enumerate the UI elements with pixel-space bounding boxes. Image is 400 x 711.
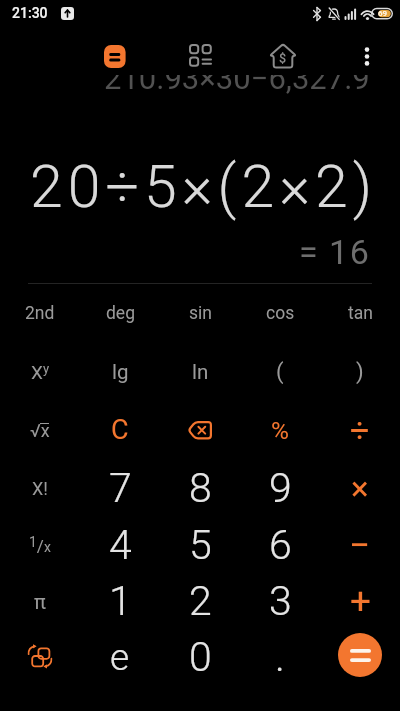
button[interactable]: tan	[321, 285, 399, 341]
staticText: 4	[109, 521, 132, 569]
button[interactable]: 5	[161, 517, 239, 573]
button[interactable]: lg	[81, 344, 159, 400]
button[interactable]	[338, 633, 382, 677]
staticText: +	[350, 580, 371, 623]
staticText: C	[111, 414, 129, 446]
staticText: sin	[189, 303, 212, 324]
button[interactable]: +	[321, 573, 399, 629]
staticText: )	[356, 359, 364, 385]
button[interactable]: $	[259, 32, 307, 80]
staticText: 3	[269, 577, 292, 625]
button[interactable]: ln	[161, 344, 239, 400]
button[interactable]	[343, 32, 391, 80]
button[interactable]: 6	[241, 517, 319, 573]
button[interactable]: √x	[1, 402, 79, 458]
staticText: −	[349, 524, 371, 567]
button[interactable]: .	[241, 629, 319, 685]
staticText: ln	[192, 360, 209, 384]
staticText: 0	[189, 633, 212, 681]
button[interactable]: (	[241, 344, 319, 400]
staticText: tan	[348, 303, 373, 324]
button[interactable]: X!	[1, 460, 79, 516]
staticText: 9	[269, 464, 292, 512]
button[interactable]: cos	[241, 285, 319, 341]
button[interactable]: 2nd	[1, 285, 79, 341]
staticText: (	[276, 359, 284, 385]
staticText: 1/x	[29, 534, 51, 556]
button[interactable]: 4	[81, 517, 159, 573]
button[interactable]	[91, 32, 139, 80]
button[interactable]: 3	[241, 573, 319, 629]
button[interactable]: ÷	[321, 402, 399, 458]
staticText: %	[271, 416, 289, 445]
staticText: lg	[112, 360, 129, 384]
staticText: X!	[32, 478, 48, 499]
staticText: $	[279, 51, 287, 66]
button[interactable]: 8	[161, 460, 239, 516]
staticText: 1	[109, 577, 132, 625]
button[interactable]: 2	[161, 573, 239, 629]
staticText: 69	[378, 9, 388, 18]
staticText: e	[110, 636, 130, 679]
button[interactable]: 9	[241, 460, 319, 516]
button[interactable]: %	[241, 402, 319, 458]
staticText: 2nd	[25, 303, 55, 324]
button[interactable]: −	[321, 517, 399, 573]
staticText: 6	[269, 521, 292, 569]
staticText: 5	[189, 521, 212, 569]
button[interactable]: C	[81, 402, 159, 458]
staticText: ÷	[350, 410, 370, 450]
button[interactable]	[1, 629, 79, 685]
button[interactable]: ×	[321, 460, 399, 516]
staticText: √x	[30, 420, 50, 441]
staticText: = 16	[299, 232, 371, 272]
staticText: π	[34, 590, 46, 613]
button[interactable]: Xy	[1, 344, 79, 400]
button[interactable]: sin	[161, 285, 239, 341]
button[interactable]: deg	[81, 285, 159, 341]
button[interactable]: 1/x	[1, 517, 79, 573]
button[interactable]: 1	[81, 573, 159, 629]
button[interactable]: 7	[81, 460, 159, 516]
staticText: Xy	[31, 361, 50, 383]
staticText: cos	[266, 303, 295, 324]
button[interactable]: 0	[161, 629, 239, 685]
button[interactable]: )	[321, 344, 399, 400]
staticText: 8	[189, 464, 212, 512]
staticText: .	[275, 633, 285, 681]
staticText: 20÷5×(2×2)	[30, 152, 378, 221]
staticText: 21:30	[12, 5, 48, 21]
staticText: ×	[351, 469, 369, 508]
button[interactable]	[176, 31, 224, 79]
staticText: 2	[189, 577, 212, 625]
staticText: 7	[109, 464, 132, 512]
staticText: deg	[106, 303, 135, 324]
staticText: 210.93×30−6,327.9	[104, 60, 370, 96]
button[interactable]: e	[81, 629, 159, 685]
button[interactable]: π	[1, 573, 79, 629]
button[interactable]	[161, 402, 239, 458]
